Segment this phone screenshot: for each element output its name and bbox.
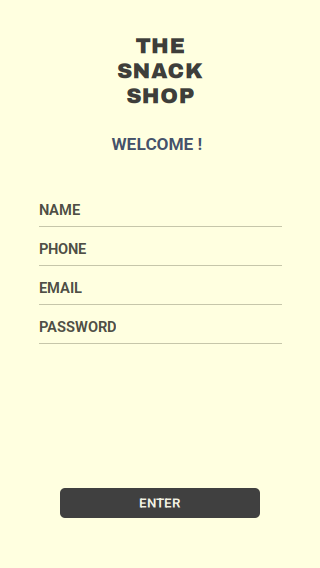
- staticText: WELCOME !: [111, 134, 202, 154]
- staticText: NAME: [39, 201, 80, 219]
- staticText: PASSWORD: [39, 318, 117, 336]
- button[interactable]: PASSWORD: [39, 319, 282, 349]
- staticText: SHOP: [126, 84, 194, 108]
- staticText: EMAIL: [39, 279, 82, 297]
- staticText: PHONE: [39, 240, 86, 258]
- staticText: SNACK: [117, 59, 203, 83]
- staticText: ENTER: [139, 495, 181, 511]
- button[interactable]: NAME: [39, 202, 282, 232]
- button[interactable]: ENTER: [60, 488, 260, 518]
- staticText: THE: [135, 34, 184, 58]
- button[interactable]: EMAIL: [39, 280, 282, 310]
- button[interactable]: PHONE: [39, 241, 282, 271]
